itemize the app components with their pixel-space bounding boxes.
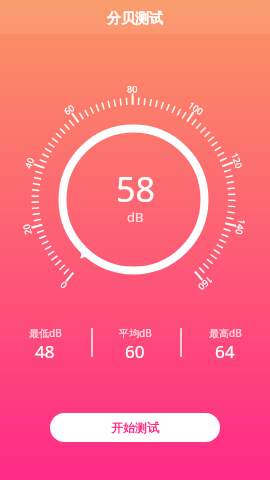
staticText: 开始测试 [111, 420, 159, 435]
button[interactable]: 开始测试 [50, 413, 220, 442]
staticText: 最高dB [209, 326, 242, 340]
staticText: dB [127, 208, 144, 226]
staticText: 58 [116, 166, 155, 212]
staticText: 48 [35, 340, 55, 363]
staticText: 最低dB [29, 326, 62, 340]
staticText: 分贝测试 [107, 10, 163, 28]
staticText: 平均dB [119, 326, 152, 340]
staticText: 64 [215, 340, 235, 363]
staticText: 60 [125, 340, 145, 363]
